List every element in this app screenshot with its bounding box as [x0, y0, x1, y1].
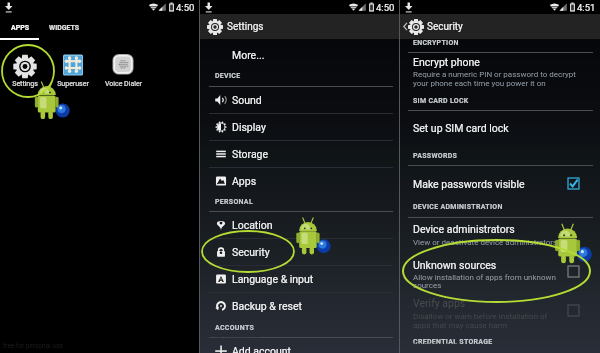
staticText: PASSWORDS: [413, 152, 458, 160]
staticText: Apps: [232, 175, 257, 187]
button[interactable]: [400, 52, 600, 91]
staticText: 4:51: [577, 2, 596, 13]
staticText: Sound: [232, 94, 262, 106]
staticText: free for personal use: [201, 335, 261, 343]
staticText: CREDENTIAL STORAGE: [413, 338, 493, 346]
button[interactable]: Add account: [200, 337, 399, 353]
staticText: Voice Dialer: [105, 80, 142, 88]
staticText: Security: [427, 21, 463, 33]
staticText: Verify apps: [413, 297, 466, 309]
button[interactable]: Settings: [200, 14, 399, 39]
staticText: Settings: [227, 21, 264, 33]
staticText: SIM CARD LOCK: [413, 97, 469, 105]
staticText: Language & input: [232, 273, 314, 285]
staticText: Add account: [232, 345, 292, 353]
button[interactable]: [400, 165, 600, 197]
button[interactable]: [400, 217, 600, 249]
button[interactable]: [400, 256, 600, 296]
button[interactable]: Security: [200, 238, 399, 265]
staticText: Encrypt phone: [413, 56, 480, 68]
button[interactable]: Security: [400, 14, 600, 39]
button[interactable]: Voice Dialer: [98, 50, 148, 94]
staticText: View or deactivate device administrators: [413, 238, 558, 247]
button[interactable]: [400, 297, 600, 335]
staticText: More...: [232, 49, 265, 61]
staticText: ACCOUNTS: [215, 324, 255, 332]
staticText: PERSONAL: [215, 198, 253, 206]
staticText: Location: [232, 219, 273, 231]
staticText: DEVICE: [215, 72, 241, 80]
button[interactable]: Apps: [200, 167, 399, 194]
staticText: apps that may cause harm: [413, 321, 508, 330]
staticText: Make passwords visible: [413, 178, 525, 190]
button[interactable]: Language & input: [200, 265, 399, 292]
staticText: Set up SIM card lock: [413, 122, 509, 134]
button[interactable]: Location: [200, 211, 399, 238]
button[interactable]: Storage: [200, 140, 399, 167]
staticText: WIDGETS: [49, 24, 80, 32]
staticText: Require a numeric PIN or password to dec…: [413, 70, 576, 79]
staticText: ENCRYPTION: [413, 39, 459, 47]
staticText: Disallow or warn before installation of: [413, 312, 548, 321]
button[interactable]: Sound: [200, 86, 399, 113]
staticText: APPS: [11, 24, 30, 32]
button[interactable]: Backup & reset: [200, 292, 399, 319]
staticText: Device administrators: [413, 223, 515, 235]
button[interactable]: Superuser: [48, 50, 98, 94]
staticText: Unknown sources: [413, 259, 497, 271]
button[interactable]: More...: [200, 41, 399, 68]
staticText: Superuser: [57, 80, 89, 88]
staticText: your phone each time you power it on: [413, 79, 546, 88]
button[interactable]: WIDGETS: [39, 14, 91, 39]
staticText: 4:50: [376, 2, 395, 13]
staticText: Settings: [12, 80, 38, 88]
staticText: sources: [413, 281, 442, 290]
staticText: Backup & reset: [232, 300, 302, 312]
button[interactable]: Settings: [0, 50, 50, 94]
staticText: Display: [232, 121, 266, 133]
staticText: free for personal use: [3, 342, 63, 350]
staticText: DEVICE ADMINISTRATION: [413, 203, 503, 211]
staticText: Security: [232, 246, 270, 258]
button[interactable]: [400, 110, 600, 142]
button[interactable]: APPS: [0, 14, 39, 39]
button[interactable]: Display: [200, 113, 399, 140]
staticText: Storage: [232, 148, 269, 160]
staticText: 4:50: [176, 2, 195, 13]
staticText: free for personal use: [401, 341, 461, 349]
staticText: Allow installation of apps from unknown: [413, 273, 556, 282]
